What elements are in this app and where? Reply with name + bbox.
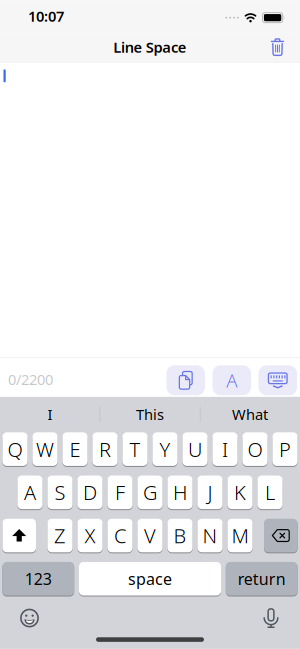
staticText: M (231, 522, 248, 549)
staticText: E (69, 436, 80, 462)
staticText: W (36, 436, 54, 462)
button[interactable]: H (167, 475, 193, 510)
button[interactable]: C (107, 518, 133, 553)
button[interactable] (20, 608, 39, 627)
staticText: X (84, 522, 95, 549)
staticText: C (114, 522, 126, 549)
button[interactable]: R (92, 432, 118, 466)
staticText: space (128, 568, 172, 589)
button[interactable] (258, 362, 297, 392)
staticText: 10:07 (28, 6, 64, 26)
button[interactable]: 123 (2, 561, 74, 596)
staticText: O (247, 436, 262, 462)
staticText: I (47, 405, 52, 424)
staticText: K (234, 479, 246, 506)
button[interactable]: O (242, 432, 268, 466)
staticText: A (226, 368, 237, 393)
button[interactable]: W (32, 432, 58, 466)
staticText: D (83, 479, 97, 506)
button[interactable]: G (137, 475, 163, 510)
staticText: T (129, 436, 140, 462)
staticText: I (222, 436, 228, 462)
button[interactable]: P (272, 432, 298, 466)
button[interactable] (264, 518, 298, 553)
button[interactable]: F (107, 475, 133, 510)
staticText: This (136, 405, 164, 424)
staticText: return (238, 568, 286, 589)
button[interactable]: I (0, 397, 99, 432)
staticText: Line Space (113, 37, 187, 57)
button[interactable]: L (257, 475, 283, 510)
button[interactable] (271, 38, 300, 56)
staticText: 123 (25, 568, 52, 589)
staticText: V (144, 522, 156, 549)
button[interactable]: J (197, 475, 223, 510)
button[interactable]: S (47, 475, 73, 510)
button[interactable] (263, 608, 278, 628)
button[interactable]: X (77, 518, 103, 553)
button[interactable]: B (167, 518, 193, 553)
button[interactable]: K (227, 475, 253, 510)
staticText: A (24, 479, 36, 506)
staticText: Z (54, 522, 66, 549)
button[interactable]: U (182, 432, 208, 466)
button[interactable]: Y (152, 432, 178, 466)
button[interactable]: Z (47, 518, 73, 553)
staticText: Y (159, 436, 170, 462)
staticText: P (279, 436, 291, 462)
staticText: R (99, 436, 111, 462)
button[interactable]: V (137, 518, 163, 553)
staticText: N (202, 522, 217, 549)
button[interactable]: space (79, 561, 221, 596)
staticText: J (207, 479, 212, 506)
staticText: S (54, 479, 65, 506)
button[interactable]: This (100, 397, 200, 432)
button[interactable]: Q (2, 432, 28, 466)
button[interactable]: E (62, 432, 88, 466)
staticText: B (173, 522, 186, 549)
staticText: L (265, 479, 275, 506)
staticText: What (232, 405, 268, 424)
staticText: F (115, 479, 125, 506)
staticText: Q (7, 436, 22, 462)
button[interactable] (166, 362, 205, 392)
button[interactable]: return (226, 561, 298, 596)
button[interactable]: M (227, 518, 253, 553)
button[interactable]: What (200, 397, 299, 432)
button[interactable]: I (212, 432, 238, 466)
button[interactable]: D (77, 475, 103, 510)
staticText: G (143, 479, 157, 506)
staticText: 0/2200 (8, 370, 53, 389)
staticText: U (188, 436, 202, 462)
staticText: H (173, 479, 187, 506)
button[interactable] (2, 518, 36, 553)
button[interactable]: A (212, 362, 251, 392)
button[interactable]: T (122, 432, 148, 466)
button[interactable]: A (17, 475, 43, 510)
button[interactable]: N (197, 518, 223, 553)
